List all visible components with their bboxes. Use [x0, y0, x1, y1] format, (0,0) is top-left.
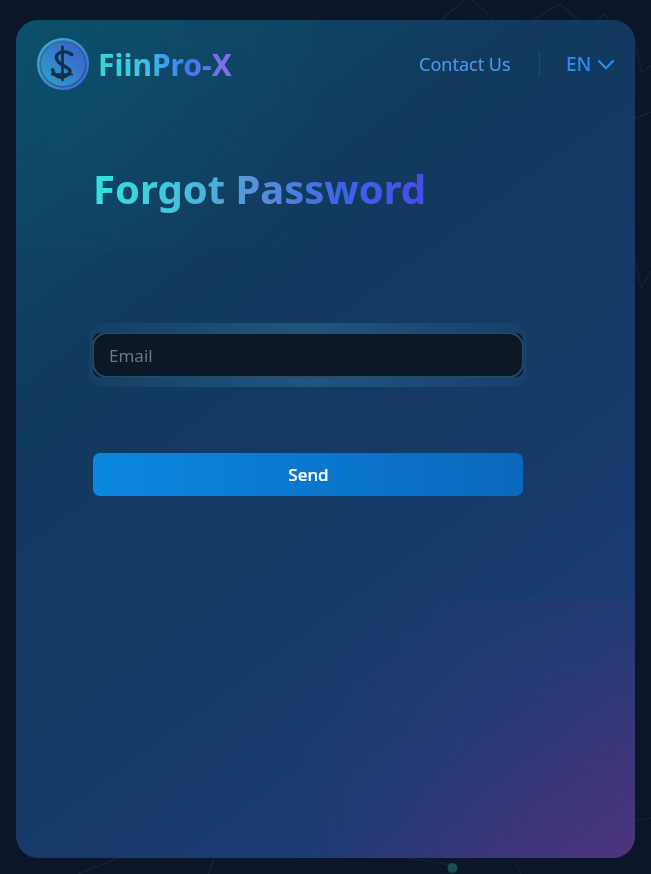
button[interactable]: Change language	[562, 45, 617, 83]
staticText: Send	[288, 463, 329, 486]
staticText: Contact Us	[419, 52, 511, 77]
button[interactable]: Send	[93, 453, 523, 496]
staticText: EN	[566, 51, 592, 77]
staticText: Email	[109, 344, 153, 367]
button[interactable]: Email	[93, 333, 523, 377]
staticText: FiinPro-X	[98, 44, 232, 85]
button[interactable]: Contact Us	[413, 46, 517, 83]
staticText: Forgot Password	[93, 161, 427, 215]
button[interactable]: FiinPro-X logo	[37, 38, 89, 90]
